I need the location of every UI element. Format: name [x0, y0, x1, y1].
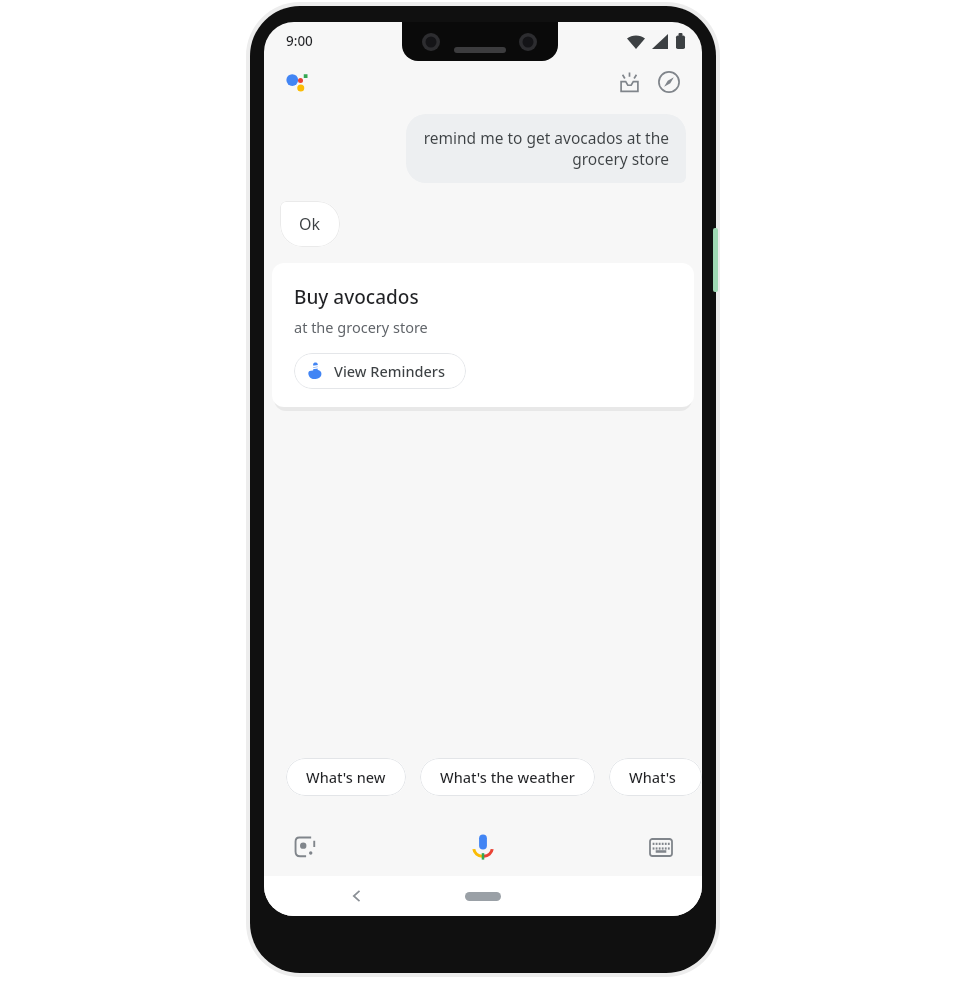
staticText: What's the weather: [440, 767, 575, 787]
button[interactable]: What's my wa: [609, 758, 702, 796]
staticText: What's new: [306, 767, 386, 787]
staticText: at the grocery store: [294, 317, 428, 337]
button[interactable]: Voice input: [459, 823, 507, 871]
staticText: remind me to get avocados at the grocery…: [423, 127, 669, 170]
button[interactable]: Google Assistant: [280, 65, 314, 99]
button[interactable]: Google Lens: [285, 827, 325, 867]
button[interactable]: View Reminders: [294, 353, 466, 389]
button[interactable]: Inbox: [609, 62, 649, 102]
staticText: Ok: [299, 213, 321, 235]
button[interactable]: Keyboard: [641, 827, 681, 867]
button[interactable]: Ok: [280, 201, 340, 247]
staticText: Buy avocados: [294, 284, 419, 310]
staticText: 9:00: [286, 32, 313, 50]
button[interactable]: Explore: [649, 62, 689, 102]
button[interactable]: Buy avocados: [272, 263, 694, 407]
staticText: View Reminders: [334, 361, 446, 381]
staticText: What's my wa: [629, 767, 682, 787]
button[interactable]: remind me to get avocados at the grocery…: [406, 114, 686, 183]
button[interactable]: What's new: [286, 758, 406, 796]
button[interactable]: What's the weather: [420, 758, 595, 796]
